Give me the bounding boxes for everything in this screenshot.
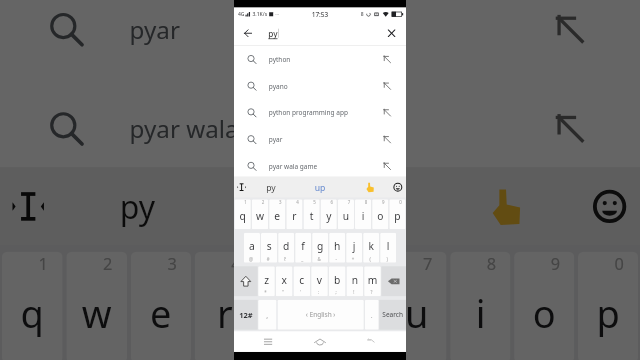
button[interactable]: Cursor control [234,180,248,194]
button[interactable]: 1 [2,252,63,360]
staticText: u [405,288,429,339]
button[interactable]: Navigate up [240,25,256,41]
button[interactable]: 1 [234,199,251,229]
button[interactable]: py [93,169,182,244]
button[interactable]: Recent apps [258,332,278,352]
button[interactable]: pyar wala game [234,153,406,179]
button[interactable]: ( [363,233,379,263]
button[interactable]: Sticker suggestion [473,169,540,244]
button[interactable]: " [276,266,292,296]
button[interactable]: 0 [389,199,405,229]
staticText: e [150,288,172,339]
button[interactable]: 8 [355,199,371,229]
staticText: ₹ [284,256,286,262]
button[interactable]: ! [346,266,363,296]
button[interactable]: 3 [269,199,285,229]
button[interactable]: Clear query [383,25,399,41]
button[interactable]: @ [244,233,260,263]
button[interactable]: pyar [234,126,406,153]
staticText: up [300,185,340,228]
staticText: 2 [103,253,113,275]
button[interactable]: _ [295,233,311,263]
staticText: 8 [365,200,367,206]
staticText: c [299,273,304,286]
button[interactable]: 5 [303,199,320,229]
staticText: pyar wala game [130,112,310,145]
button[interactable]: Cursor control [2,180,54,232]
button[interactable]: - [329,233,345,263]
button[interactable]: 2 [66,252,127,360]
button[interactable]: ‹ English › [277,300,364,330]
staticText: 8 [487,253,497,275]
button[interactable]: 4 [286,199,302,229]
staticText: 3 [167,253,177,275]
button[interactable]: ; [329,266,345,296]
staticText: Search [382,310,403,319]
button[interactable]: & [312,233,328,263]
button[interactable]: Back [362,332,382,352]
button[interactable]: Emoji keyboard [390,179,406,195]
button[interactable] [381,266,406,296]
button[interactable]: 2 [252,199,268,229]
button[interactable]: ? [364,266,381,296]
staticText: pyano [269,82,288,90]
button[interactable]: pyar [0,0,640,79]
staticText: pyar [130,13,180,46]
staticText: s [267,239,272,253]
button[interactable]: pyar wala game [0,79,640,178]
staticText: g [317,239,323,253]
button[interactable]: 4 [195,252,255,360]
button[interactable]: # [261,233,277,263]
staticText: w [256,209,264,223]
button[interactable]: 7 [338,199,354,229]
staticText: ! [353,290,354,296]
staticText: , [266,310,268,319]
button[interactable]: Emoji keyboard [580,177,639,236]
button[interactable]: 3 [131,252,191,360]
staticText: 6 [359,253,369,275]
staticText: up [315,181,325,193]
staticText: & [317,256,321,262]
button[interactable] [234,266,258,296]
button[interactable]: 9 [372,199,388,229]
button[interactable]: Search [379,300,406,330]
button[interactable]: 8 [450,252,510,360]
staticText: i [476,288,486,339]
button[interactable]: ' [293,266,310,296]
staticText: . [371,310,373,319]
button[interactable]: * [258,266,275,296]
staticText: ? [370,290,372,296]
staticText: 4 [296,200,299,206]
button[interactable]: , [258,300,276,330]
button[interactable]: Sticker suggestion [361,177,379,197]
staticText: l [387,239,389,253]
staticText: t [281,288,296,339]
button[interactable]: . [365,300,379,330]
button[interactable]: Home [310,332,330,352]
button[interactable]: 0 [578,252,638,360]
button[interactable]: ₹ [278,233,294,263]
button[interactable]: python programming app [234,99,406,126]
staticText: y [326,209,331,223]
button[interactable]: up [272,169,368,244]
button[interactable]: pyano [234,73,406,99]
button[interactable]: + [346,233,362,263]
button[interactable]: 9 [514,252,574,360]
button[interactable]: 7 [386,252,447,360]
button[interactable]: 5 [259,252,319,360]
staticText: b [334,273,340,286]
button[interactable]: py [259,177,283,197]
button[interactable]: 6 [321,199,337,229]
staticText: q [239,209,246,223]
staticText: : [318,290,319,296]
button[interactable]: up [307,177,333,197]
staticText: 3.1K/s [252,11,267,18]
staticText: d [283,239,289,253]
button[interactable]: python [234,46,406,73]
staticText: 4 [231,253,241,275]
button[interactable]: : [311,266,328,296]
button[interactable]: ) [380,233,396,263]
staticText: n [352,273,358,286]
button[interactable]: 6 [322,252,383,360]
button[interactable]: 12# [234,300,258,330]
